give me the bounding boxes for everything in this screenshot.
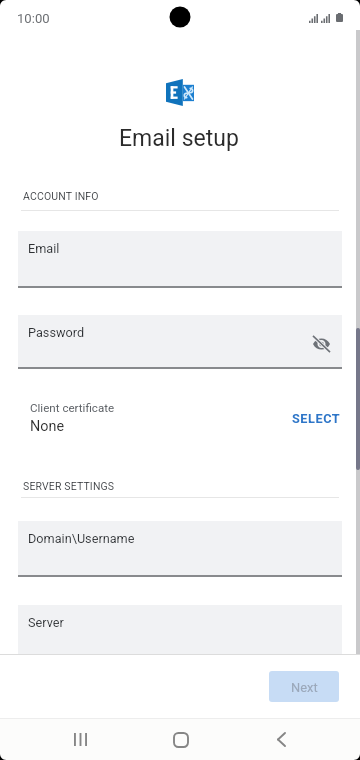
button[interactable]: Show password [306,329,336,359]
staticText: SELECT [292,411,341,426]
staticText: Domain\Username [28,531,135,546]
staticText: SERVER SETTINGS [23,480,115,492]
button[interactable]: SELECT [283,402,345,435]
button[interactable]: Back [251,719,311,760]
staticText: None [30,418,65,435]
button[interactable]: Client certificate [0,396,360,440]
button[interactable]: Server [18,605,342,655]
button[interactable]: Recents [50,719,110,760]
button[interactable]: Password [18,315,342,369]
staticText: Server [28,615,64,630]
staticText: Email setup [119,125,239,152]
button[interactable]: Next [269,671,339,702]
staticText: Client certificate [30,401,115,415]
staticText: ACCOUNT INFO [23,190,99,202]
button[interactable]: Home [151,719,211,760]
button[interactable]: Email [18,231,342,288]
staticText: Password [28,325,85,340]
staticText: Next [291,680,318,695]
staticText: Email [28,241,60,256]
staticText: 10:00 [17,11,50,26]
button[interactable]: Domain\Username [18,521,342,577]
